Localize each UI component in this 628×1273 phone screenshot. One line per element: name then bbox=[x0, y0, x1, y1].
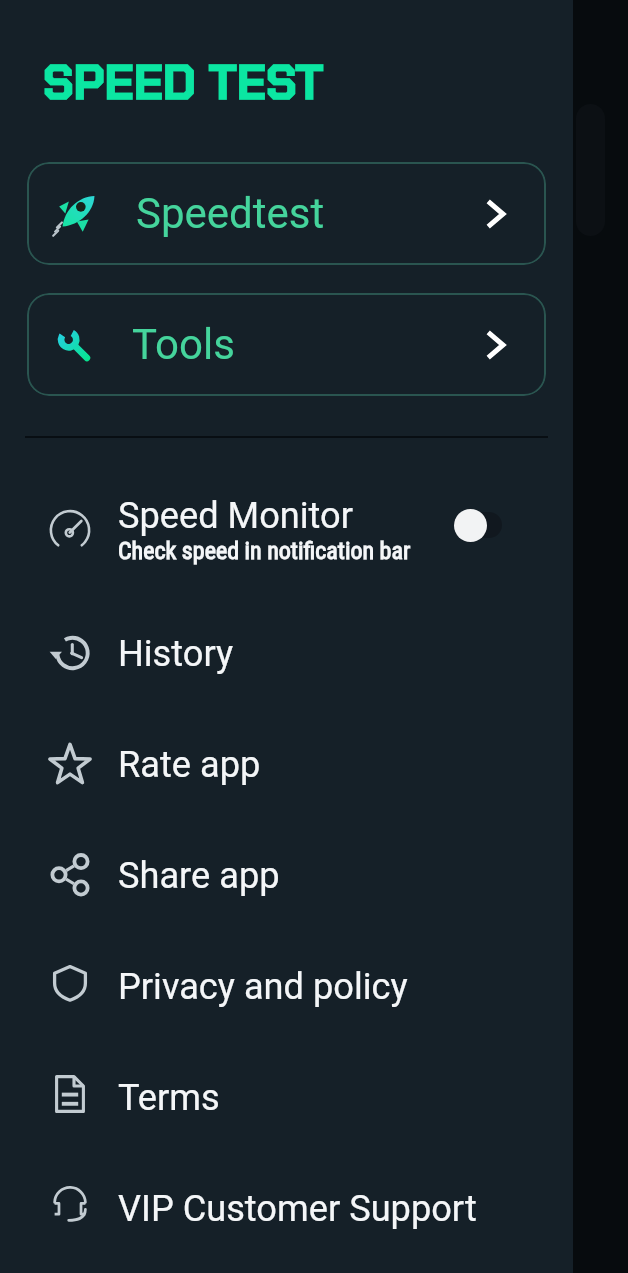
other: History bbox=[48, 631, 92, 675]
staticText: Terms bbox=[118, 1076, 220, 1118]
other: Terms bbox=[50, 1074, 90, 1114]
staticText: Privacy and policy bbox=[118, 965, 408, 1007]
staticText: Rate app bbox=[118, 743, 261, 785]
button[interactable]: Share app bbox=[0, 819, 573, 930]
other: VIP Customer Support bbox=[51, 1184, 89, 1222]
button[interactable]: Tools bbox=[27, 293, 546, 396]
staticText: VIP Customer Support bbox=[118, 1187, 477, 1229]
button[interactable]: Privacy and policy bbox=[0, 930, 573, 1041]
staticText: Tools bbox=[132, 320, 235, 369]
other: Speed monitor bbox=[49, 508, 91, 550]
other: Open bbox=[475, 194, 515, 234]
staticText: Check speed in notification bar bbox=[118, 537, 411, 565]
staticText: History bbox=[118, 632, 234, 674]
button[interactable]: Speed Monitor toggle bbox=[454, 507, 502, 543]
button[interactable]: Speedtest bbox=[27, 162, 546, 265]
other: Privacy and policy bbox=[50, 963, 90, 1003]
button[interactable]: Rate app bbox=[0, 708, 573, 819]
staticText: Speedtest bbox=[136, 189, 325, 238]
button[interactable]: VIP Customer Support bbox=[0, 1152, 573, 1263]
button[interactable]: Speed monitor bbox=[0, 461, 573, 597]
staticText: Speed Monitor bbox=[118, 494, 353, 536]
button[interactable]: Terms bbox=[0, 1041, 573, 1152]
other: Open bbox=[475, 325, 515, 365]
other: Share app bbox=[50, 855, 90, 895]
staticText: SPEED TEST bbox=[43, 51, 324, 113]
other: Rate app bbox=[48, 742, 92, 786]
staticText: Share app bbox=[118, 854, 280, 896]
button[interactable]: History bbox=[0, 597, 573, 708]
